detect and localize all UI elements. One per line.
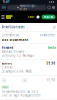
staticText: Gesamtpreis inkl. MwSt. bbox=[1, 70, 32, 73]
staticText: Lieferadresse bbox=[1, 33, 19, 37]
staticText: Bonus bbox=[3, 86, 8, 88]
staticText: 59,90 bbox=[46, 62, 55, 65]
staticText: Summe bbox=[1, 62, 12, 65]
staticText: Max Mustermann bbox=[1, 38, 28, 42]
staticText: www.beispiel.de bbox=[19, 4, 36, 11]
staticText: Versand bbox=[1, 46, 13, 49]
staticText: 2 Artikel bbox=[1, 66, 13, 69]
button[interactable]: Menu bbox=[0, 11, 6, 22]
staticText: bearbeiten bbox=[39, 33, 55, 37]
button[interactable]: Account bbox=[36, 15, 39, 18]
staticText: Lieferung 3–5 Werktage bbox=[1, 54, 34, 57]
staticText: AA bbox=[2, 6, 6, 9]
staticText: 59,90 bbox=[46, 79, 55, 82]
staticText: und 30 Tage Rückgaberecht bbox=[1, 94, 40, 97]
staticText: Kasse bbox=[27, 15, 34, 19]
button[interactable]: Page settings bbox=[2, 5, 6, 10]
staticText: Gratis bbox=[47, 46, 55, 49]
staticText: Standard Versand bbox=[1, 50, 24, 53]
button[interactable]: WEITER bbox=[41, 15, 55, 19]
button[interactable]: Account bbox=[52, 6, 55, 9]
staticText: Bestellübersicht bbox=[1, 25, 24, 29]
staticText: Versandkostenfrei ab 50 € bbox=[1, 90, 38, 93]
button[interactable]: Address bbox=[7, 5, 46, 10]
button[interactable]: bearbeiten bbox=[39, 33, 55, 37]
button[interactable]: Reload bbox=[48, 6, 51, 9]
staticText: WEITER bbox=[43, 15, 53, 19]
staticText: 9:41 bbox=[3, 0, 10, 4]
button[interactable]: Help bbox=[53, 26, 55, 28]
